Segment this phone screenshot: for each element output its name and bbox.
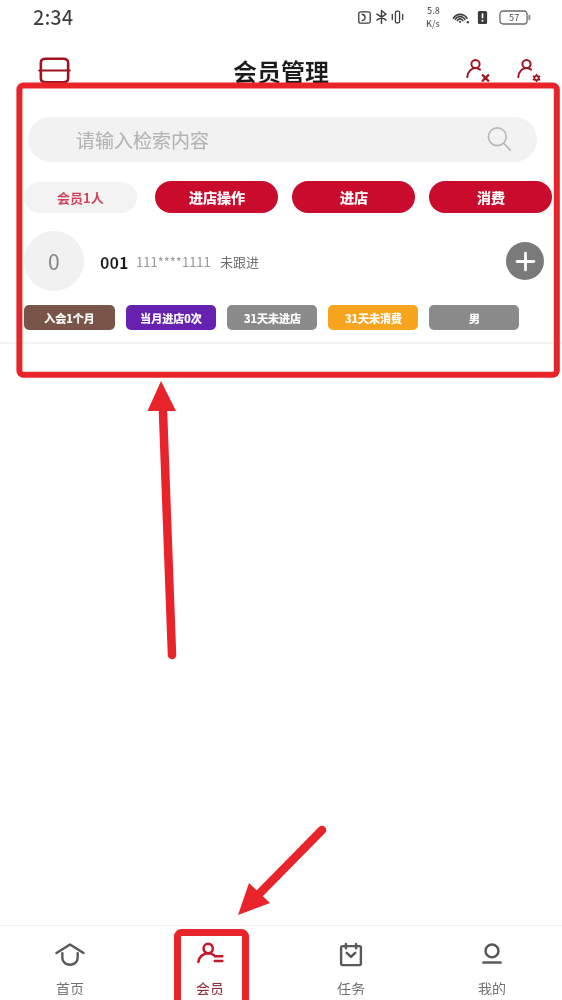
button[interactable]: Menu <box>31 47 77 93</box>
button[interactable]: 31天未进店 <box>227 305 317 330</box>
staticText: 2:34 <box>33 2 74 31</box>
staticText: 入会1个月 <box>44 310 95 326</box>
button[interactable]: Remove member <box>457 50 497 90</box>
staticText: 消费 <box>477 187 505 207</box>
staticText: 我的 <box>478 978 506 995</box>
button[interactable]: 入会1个月 <box>24 305 115 330</box>
staticText: 5.8 <box>427 4 440 17</box>
button[interactable]: 会员1人 <box>24 182 137 213</box>
staticText: 进店操作 <box>189 187 245 207</box>
staticText: 0 <box>48 246 60 276</box>
staticText: 会员1人 <box>57 188 104 207</box>
staticText: 57 <box>509 11 520 24</box>
button[interactable]: 进店 <box>292 181 415 213</box>
staticText: 111****1111 <box>136 252 211 271</box>
staticText: 进店 <box>340 187 368 207</box>
button[interactable]: 0 <box>24 231 84 291</box>
button[interactable]: Add member <box>506 242 544 280</box>
staticText: 男 <box>469 310 480 326</box>
staticText: 会员管理 <box>233 53 329 88</box>
staticText: 首页 <box>56 978 84 995</box>
button[interactable]: 男 <box>429 305 519 330</box>
staticText: 请输入检索内容 <box>76 126 210 154</box>
staticText: 001 <box>100 250 129 273</box>
button[interactable]: 会员 <box>140 926 280 1000</box>
staticText: 31天未进店 <box>244 310 301 326</box>
staticText: 当月进店0次 <box>140 310 202 326</box>
button[interactable]: 我的 <box>421 926 562 1000</box>
button[interactable]: Member settings <box>508 50 548 90</box>
staticText: K/s <box>426 17 440 30</box>
button[interactable]: 任务 <box>280 926 421 1000</box>
button[interactable]: 首页 <box>0 926 140 1000</box>
button[interactable]: 消费 <box>429 181 552 213</box>
staticText: 31天未消费 <box>345 310 402 326</box>
button[interactable]: 进店操作 <box>155 181 278 213</box>
staticText: 任务 <box>337 978 365 995</box>
button[interactable]: 31天未消费 <box>328 305 418 330</box>
staticText: 未跟进 <box>220 252 260 271</box>
staticText: 会员 <box>196 978 224 995</box>
button[interactable]: 请输入检索内容 <box>28 117 537 162</box>
button[interactable]: 当月进店0次 <box>126 305 216 330</box>
